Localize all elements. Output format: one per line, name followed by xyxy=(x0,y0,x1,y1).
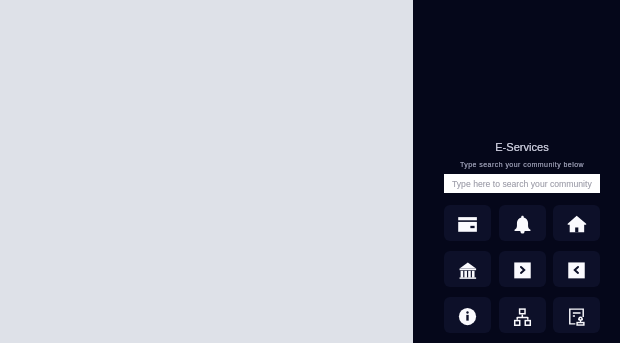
button[interactable]: Information xyxy=(444,297,491,333)
button[interactable]: Previous xyxy=(553,251,600,287)
button[interactable]: Type here to search your community xyxy=(444,174,600,193)
staticText: Type search your community below xyxy=(444,161,600,169)
staticText: Type here to search your community xyxy=(452,179,592,189)
staticText: E-Services xyxy=(444,141,600,153)
button[interactable]: Approvals xyxy=(553,297,600,333)
button[interactable]: Next xyxy=(499,251,546,287)
button[interactable]: Home xyxy=(553,205,600,241)
button[interactable]: Bank xyxy=(444,251,491,287)
button[interactable]: Payments xyxy=(444,205,491,241)
button[interactable]: Organisation xyxy=(499,297,546,333)
button[interactable]: Notifications xyxy=(499,205,546,241)
